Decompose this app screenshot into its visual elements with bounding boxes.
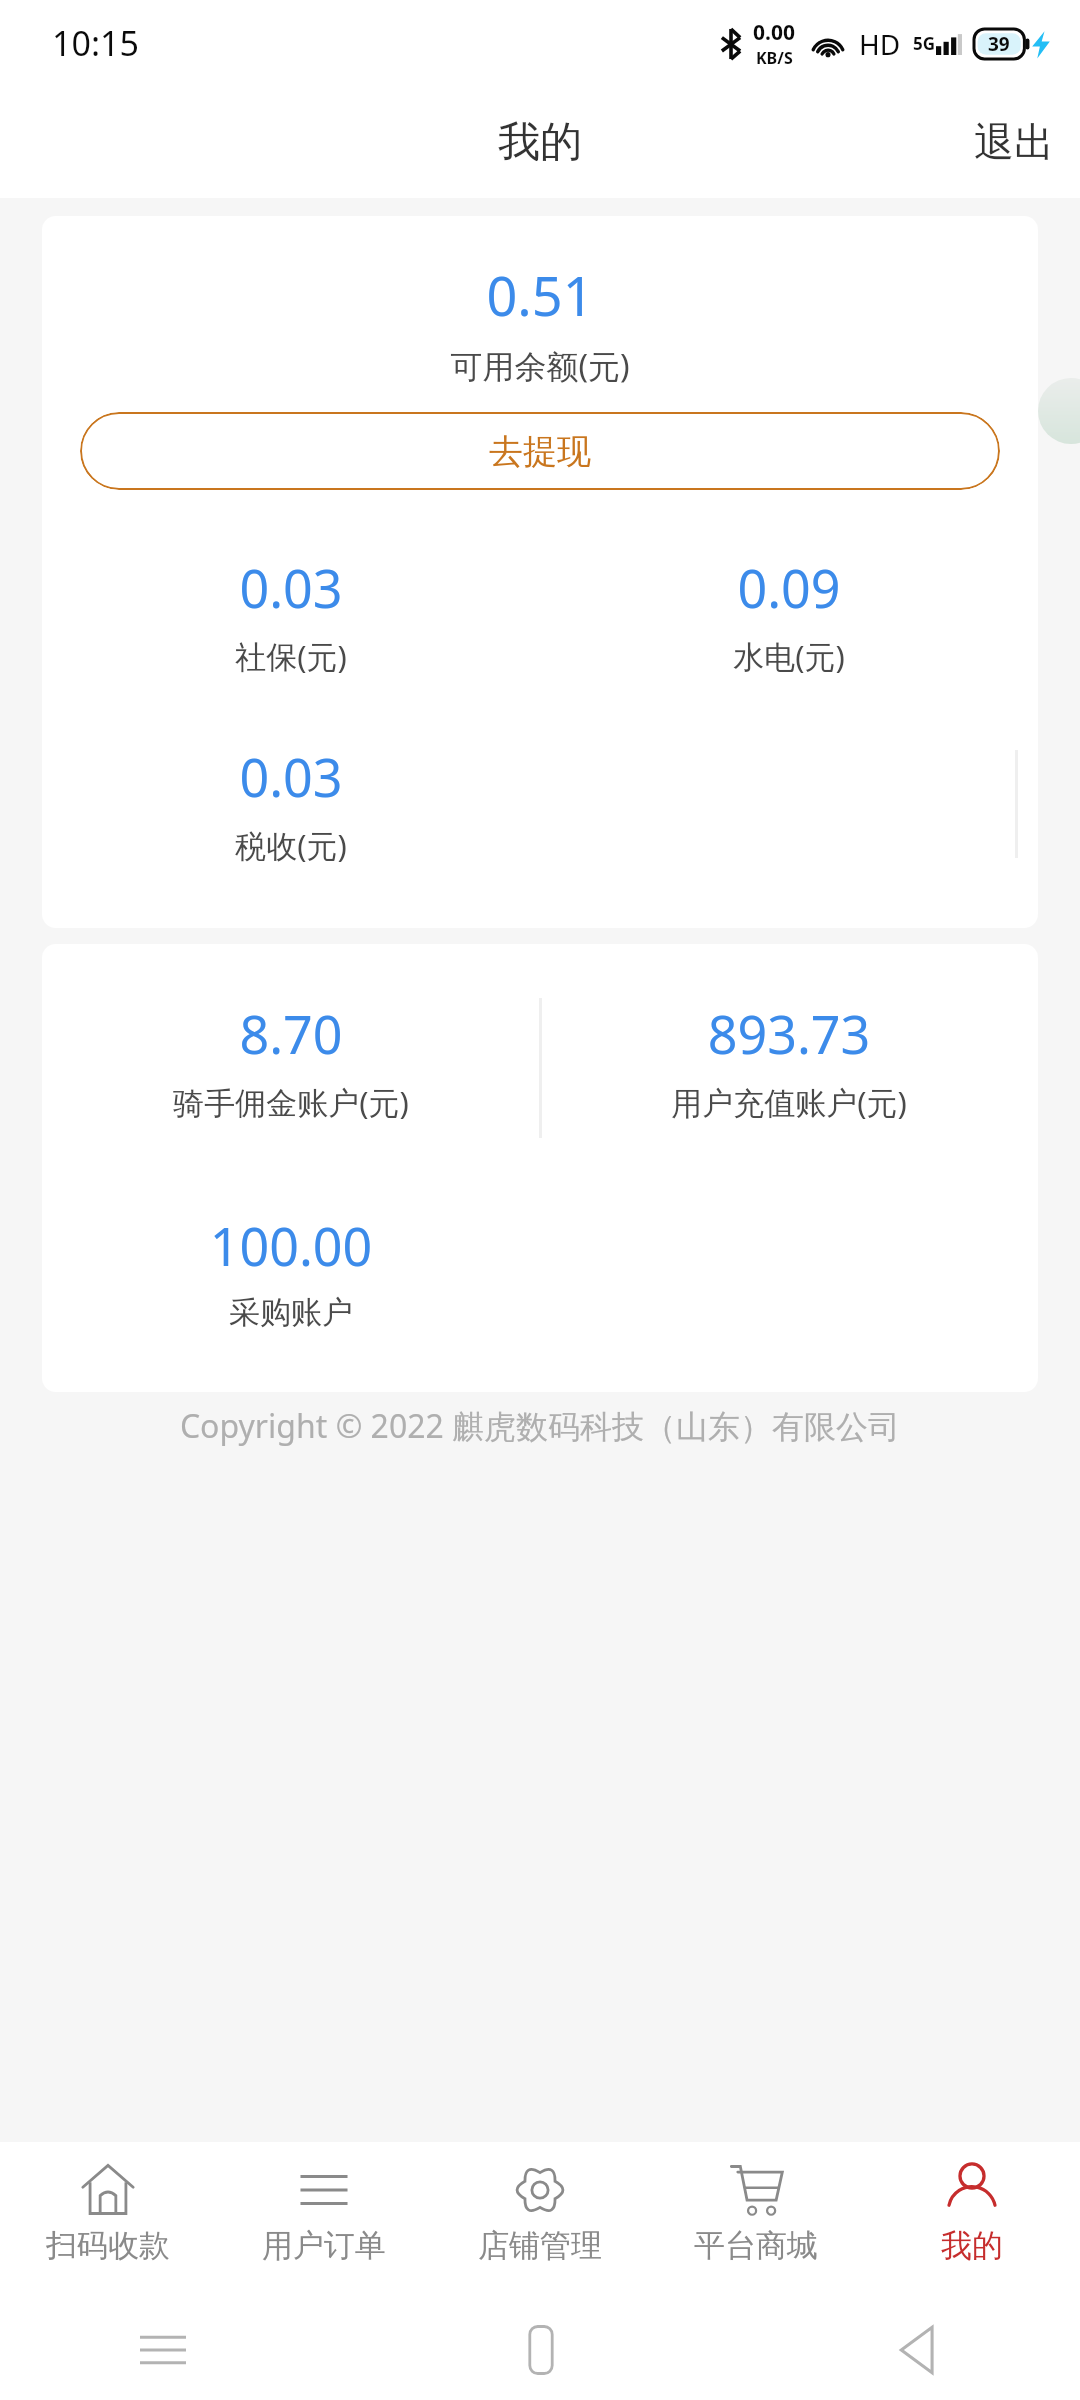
button[interactable]: Recents [140, 2330, 186, 2370]
button[interactable]: Back [896, 2323, 940, 2377]
staticText: 8.70 [42, 998, 540, 1069]
button[interactable]: 0.03 [42, 552, 540, 677]
button[interactable]: Assistant [1038, 378, 1080, 444]
staticText: 5G [913, 32, 936, 55]
staticText: 平台商城 [694, 2226, 818, 2265]
staticText: 0.00 [753, 18, 795, 47]
button[interactable]: 8.70 [42, 998, 540, 1123]
button[interactable]: 扫码收款 [0, 2142, 216, 2300]
button[interactable]: 退出 [948, 101, 1080, 183]
staticText: HD [859, 25, 901, 63]
button[interactable]: 100.00 [42, 1210, 540, 1332]
button[interactable]: 用户订单 [216, 2142, 432, 2300]
staticText: 骑手佣金账户(元) [42, 1081, 540, 1123]
button[interactable]: 去提现 [80, 412, 1000, 490]
staticText: 采购账户 [42, 1293, 540, 1332]
staticText: 用户订单 [262, 2226, 386, 2265]
staticText: 用户充值账户(元) [540, 1081, 1038, 1123]
button[interactable]: 店铺管理 [432, 2142, 648, 2300]
staticText: 100.00 [42, 1210, 540, 1281]
staticText: 我的 [941, 2226, 1003, 2265]
staticText: 893.73 [540, 998, 1038, 1069]
staticText: 0.03 [42, 741, 540, 812]
staticText: 社保(元) [42, 635, 540, 677]
staticText: 水电(元) [540, 635, 1038, 677]
staticText: 0.03 [42, 552, 540, 623]
staticText: KB/S [756, 47, 793, 69]
staticText: 0.09 [540, 552, 1038, 623]
staticText: 扫码收款 [46, 2226, 170, 2265]
staticText: 去提现 [489, 430, 591, 473]
button[interactable]: 我的 [864, 2142, 1080, 2300]
button[interactable]: Home [521, 2322, 561, 2378]
button[interactable]: 平台商城 [648, 2142, 864, 2300]
staticText: 店铺管理 [478, 2226, 602, 2265]
staticText: 0.51 [42, 258, 1038, 332]
staticText: 10:15 [52, 20, 139, 66]
staticText: 退出 [974, 117, 1054, 167]
button[interactable]: 0.03 [42, 741, 540, 866]
staticText: 税收(元) [42, 824, 540, 866]
staticText: 39 [988, 31, 1010, 57]
button[interactable]: 0.09 [540, 552, 1038, 677]
staticText: 可用余额(元) [42, 344, 1038, 388]
staticText: 我的 [498, 116, 582, 169]
staticText: Copyright © 2022 麒虎数码科技（山东）有限公司 [0, 1404, 1080, 1448]
button[interactable]: 893.73 [540, 998, 1038, 1123]
